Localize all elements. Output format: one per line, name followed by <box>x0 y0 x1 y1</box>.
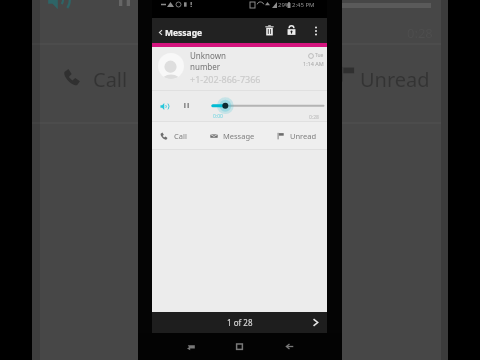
button[interactable]: Speaker <box>155 97 174 116</box>
other: Next <box>311 318 320 327</box>
button[interactable]: Message <box>210 122 265 149</box>
staticText: +1-202-866-7366 <box>190 73 261 85</box>
staticText: 2:45 PM <box>292 1 315 9</box>
button[interactable]: Delete <box>259 18 280 43</box>
button[interactable]: Unread <box>277 122 323 149</box>
staticText: 0:00 <box>213 113 223 120</box>
staticText: Message <box>165 27 203 39</box>
staticText: Unknown <box>190 50 226 61</box>
staticText: Call <box>93 66 128 93</box>
button[interactable]: Pause <box>179 98 193 112</box>
button[interactable]: Back <box>273 333 306 360</box>
button[interactable]: Recents <box>174 333 207 360</box>
button[interactable]: Home <box>223 333 256 360</box>
staticText: Call <box>174 131 187 141</box>
staticText: number <box>190 61 221 72</box>
button[interactable]: 1 of 28 <box>152 312 327 333</box>
button[interactable]: Lock <box>281 18 302 43</box>
staticText: Message <box>223 131 255 141</box>
staticText: 0:28 <box>309 114 319 121</box>
staticText: Unread <box>290 131 317 141</box>
staticText: Unread <box>360 66 430 93</box>
button[interactable]: More options <box>305 18 326 43</box>
staticText: 29% <box>278 1 290 9</box>
staticText: 1:14 AM <box>303 60 324 67</box>
staticText: 1 of 28 <box>227 317 253 328</box>
staticText: Tue <box>315 52 324 59</box>
button[interactable]: Message <box>157 20 209 45</box>
button[interactable]: Call <box>160 122 197 149</box>
